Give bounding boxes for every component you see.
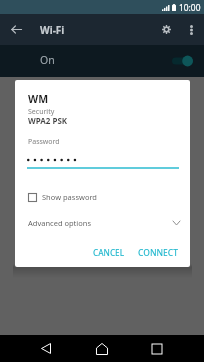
staticText: Security [28, 107, 55, 117]
button[interactable]: Show password [25, 189, 130, 205]
staticText: WM [28, 92, 49, 106]
staticText: On [40, 53, 55, 67]
staticText: WPA2 PSK [28, 115, 68, 126]
staticText: Show password [42, 192, 97, 202]
button[interactable]: Back [28, 335, 64, 362]
button[interactable]: CANCEL [89, 244, 129, 261]
button[interactable]: Home [84, 335, 120, 362]
staticText: CANCEL [93, 247, 125, 258]
staticText: 10:00 [179, 2, 201, 13]
button[interactable]: More options [180, 14, 202, 45]
button[interactable]: Settings [154, 14, 179, 45]
button[interactable]: Wi-Fi toggle [172, 53, 193, 69]
button[interactable]: Advanced options [25, 214, 180, 232]
button[interactable]: Recent apps [139, 335, 175, 362]
button[interactable]: Navigate up [5, 14, 204, 45]
staticText: Wi-Fi [40, 23, 65, 37]
staticText: Password [28, 137, 60, 147]
staticText: Advanced options [28, 218, 92, 228]
button[interactable]: CONNECT [134, 244, 182, 262]
staticText: CONNECT [138, 247, 178, 259]
